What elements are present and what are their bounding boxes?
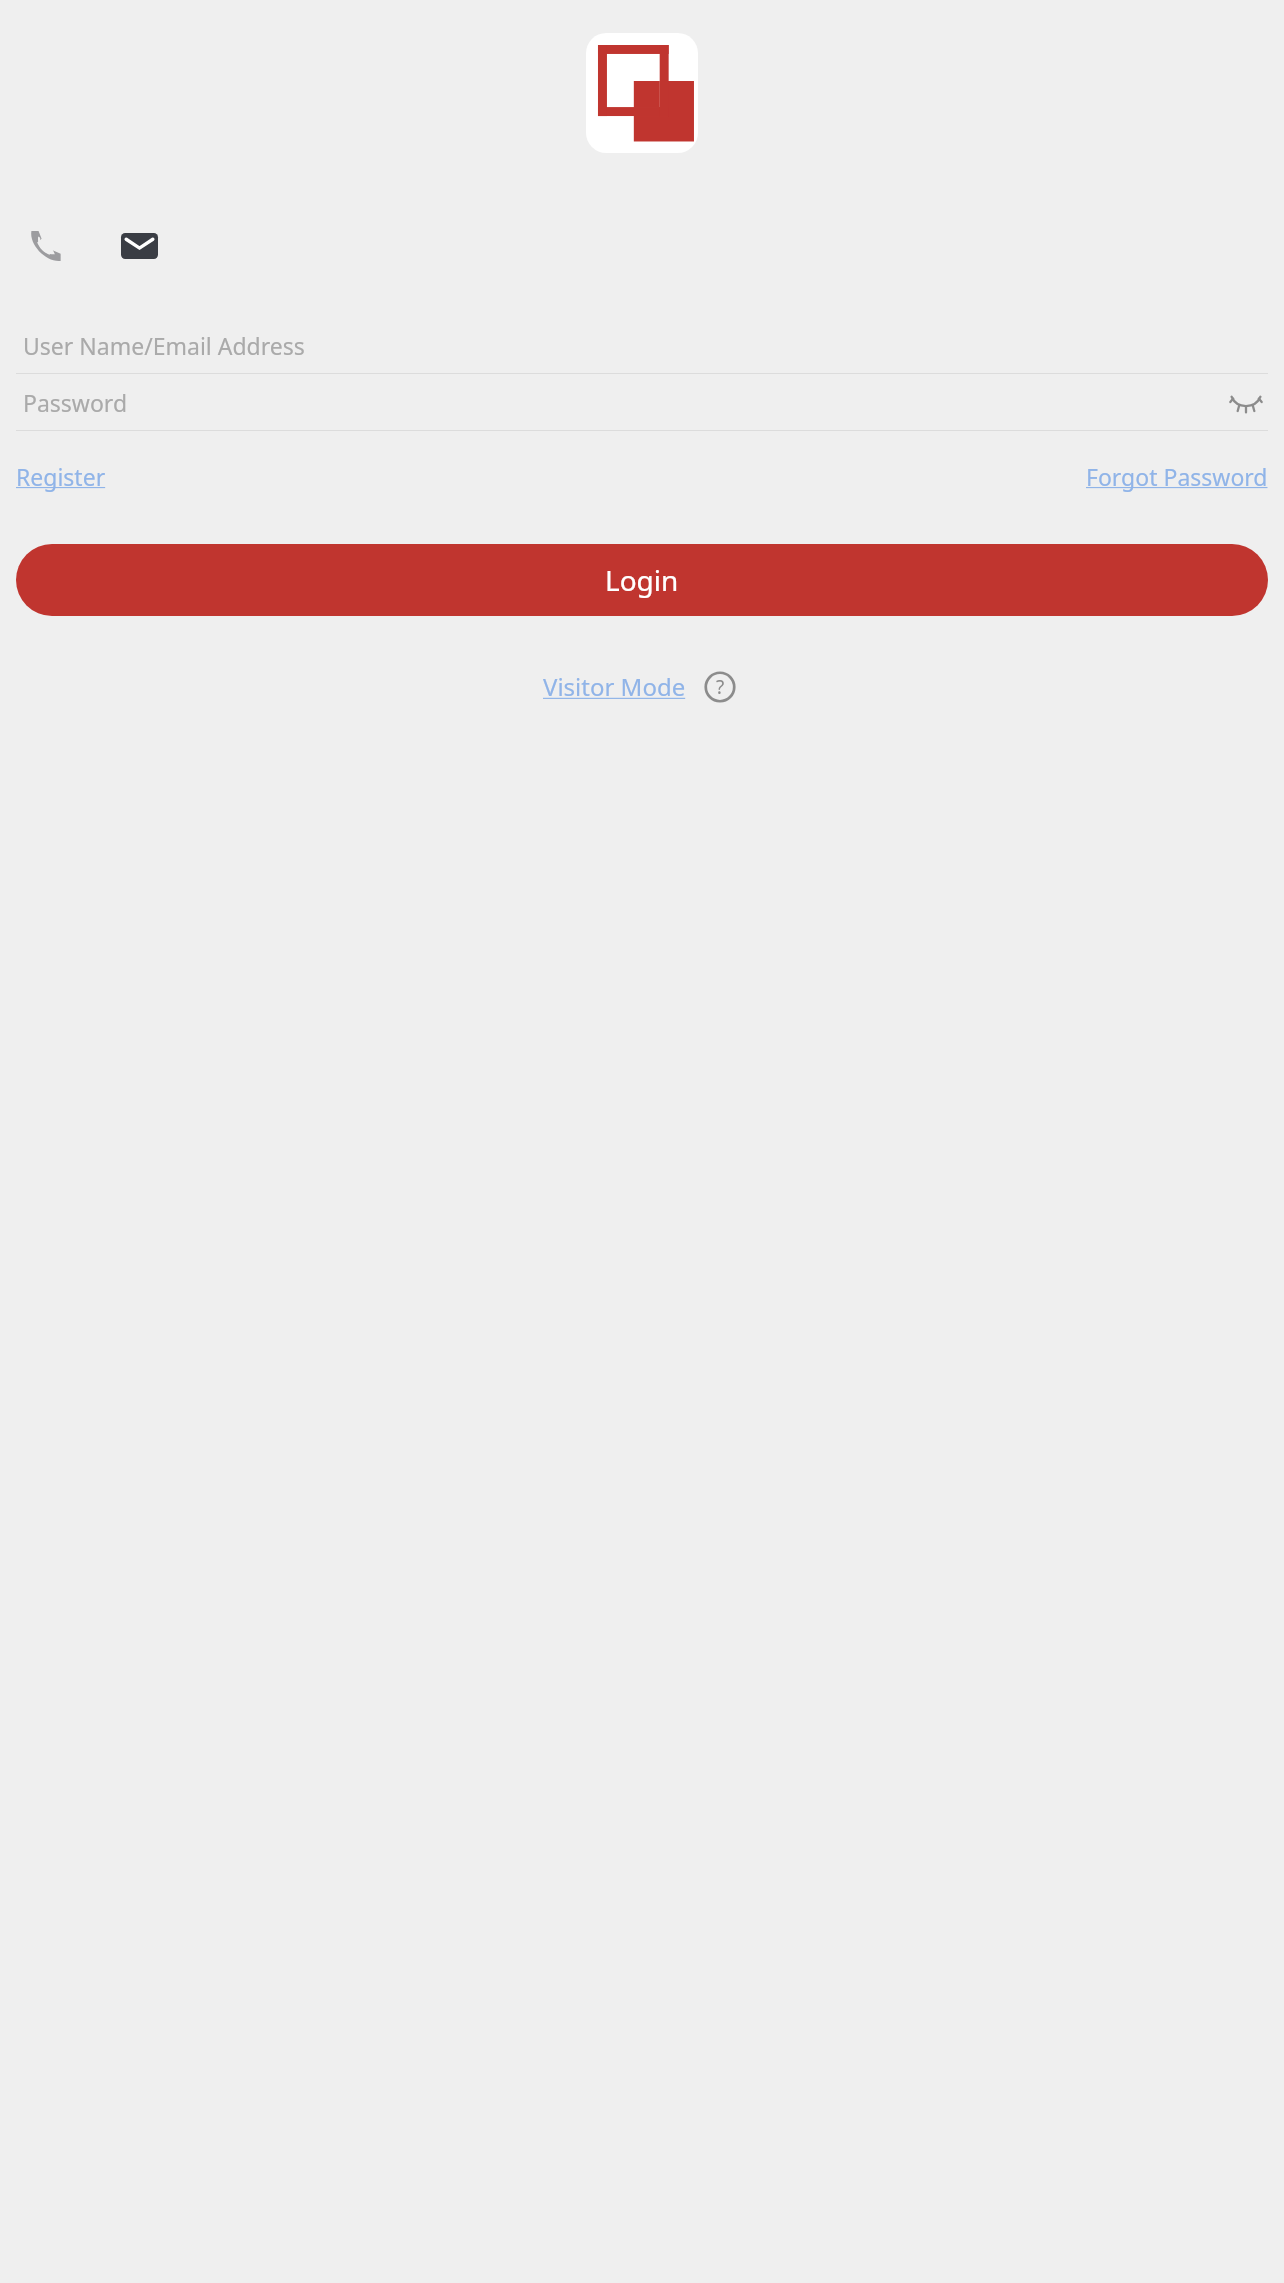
button[interactable]: Show password [1224, 380, 1268, 424]
button[interactable]: Visitor Mode [543, 664, 686, 709]
staticText: User Name/Email Address [23, 330, 305, 361]
button[interactable]: Email login [116, 223, 162, 269]
button[interactable]: Phone login [22, 223, 68, 269]
button[interactable]: Visitor mode help [698, 665, 742, 709]
staticText: Forgot Password [1086, 461, 1268, 492]
button[interactable]: Register [16, 455, 106, 498]
button[interactable]: User Name/Email Address [16, 317, 1268, 373]
button[interactable]: Forgot Password [1086, 455, 1268, 498]
staticText: Visitor Mode [543, 670, 686, 703]
staticText: Register [16, 461, 106, 492]
staticText: Login [605, 561, 679, 599]
staticText: ? [716, 674, 725, 700]
staticText: Password [23, 387, 128, 418]
button[interactable]: Login [16, 544, 1268, 616]
button[interactable]: Password [16, 374, 1268, 430]
